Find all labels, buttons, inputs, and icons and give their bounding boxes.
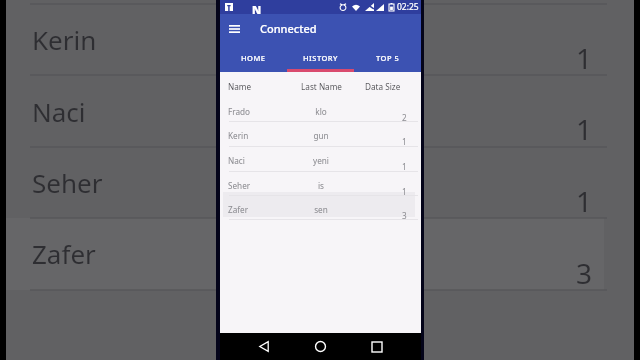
button[interactable]: HOME [220, 45, 287, 72]
staticText: 1 [402, 186, 407, 197]
button[interactable]: Back [254, 336, 274, 356]
staticText: HOME [241, 53, 266, 63]
staticText: Seher [32, 165, 103, 200]
staticText: is [301, 180, 341, 191]
staticText: Connected [260, 21, 317, 36]
staticText: 1 [576, 110, 593, 148]
staticText: Zafer [32, 236, 96, 271]
staticText: Seher [228, 180, 251, 191]
button[interactable]: Naci [220, 146, 421, 172]
button[interactable]: TOP 5 [354, 45, 421, 72]
staticText: gun [301, 130, 341, 141]
staticText: Naci [228, 155, 245, 166]
staticText: 3 [576, 254, 593, 292]
button[interactable]: Kerin [220, 121, 421, 147]
button[interactable]: Open navigation drawer [223, 18, 245, 40]
staticText: 3 [402, 210, 407, 221]
staticText: 1 [402, 136, 407, 147]
staticText: sen [301, 204, 341, 215]
staticText: Kerin [228, 130, 249, 141]
button[interactable]: Home [310, 336, 330, 356]
staticText: 02:25 [397, 1, 419, 13]
staticText: TOP 5 [376, 53, 400, 63]
staticText: Frado [228, 106, 251, 117]
staticText: HISTORY [303, 53, 338, 63]
staticText: 1 [402, 161, 407, 172]
staticText: Kerin [32, 22, 97, 57]
staticText: Data Size [365, 81, 401, 92]
staticText: 1 [576, 182, 593, 220]
button[interactable]: Frado [220, 97, 421, 123]
staticText: 1 [576, 39, 593, 77]
staticText: klo [301, 106, 341, 117]
staticText: N [252, 2, 262, 16]
staticText: yeni [301, 155, 341, 166]
staticText: Name [228, 81, 252, 92]
staticText: 2 [402, 112, 407, 123]
button[interactable]: HISTORY [287, 45, 354, 72]
staticText: Last Name [301, 81, 342, 92]
button[interactable]: Recent apps [367, 337, 387, 357]
staticText: Naci [32, 94, 86, 129]
staticText: Zafer [228, 204, 249, 215]
button[interactable]: Zafer [220, 195, 421, 220]
button[interactable]: Seher [220, 171, 421, 196]
